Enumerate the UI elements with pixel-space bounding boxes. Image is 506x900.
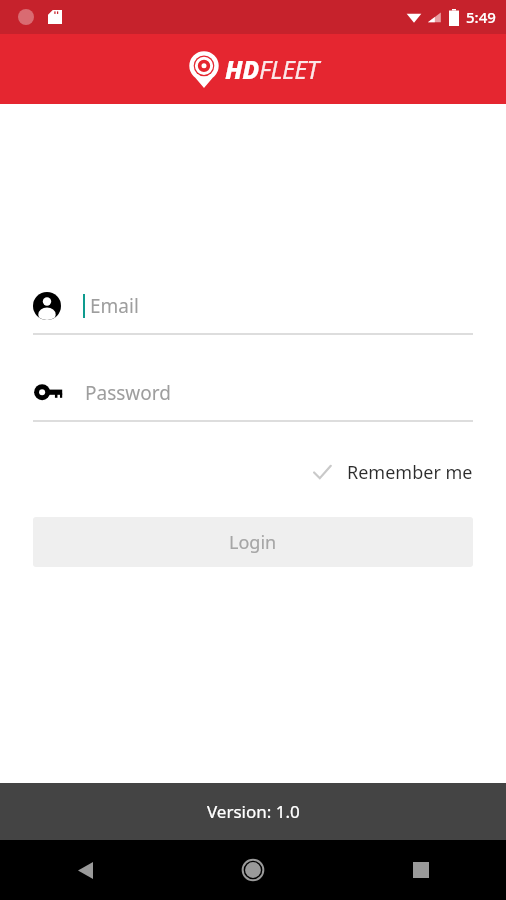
staticText: Password [85,380,171,406]
other: Email account [33,292,61,320]
staticText: HD [225,52,259,86]
staticText: 5:49 [466,7,496,27]
button[interactable]: Password [33,366,473,420]
staticText: FLEET [259,52,319,86]
button[interactable]: Email account [33,279,473,333]
button[interactable]: Back [62,847,108,893]
staticText: Version: 1.0 [207,800,300,823]
button[interactable]: Remember me [311,452,473,492]
button[interactable]: Recent apps [398,847,444,893]
other: Password [33,383,61,403]
button[interactable]: Login [33,517,473,567]
staticText: Login [229,530,277,555]
staticText: Email [90,293,139,319]
button[interactable]: Home [230,847,276,893]
staticText: Remember me [347,460,473,485]
